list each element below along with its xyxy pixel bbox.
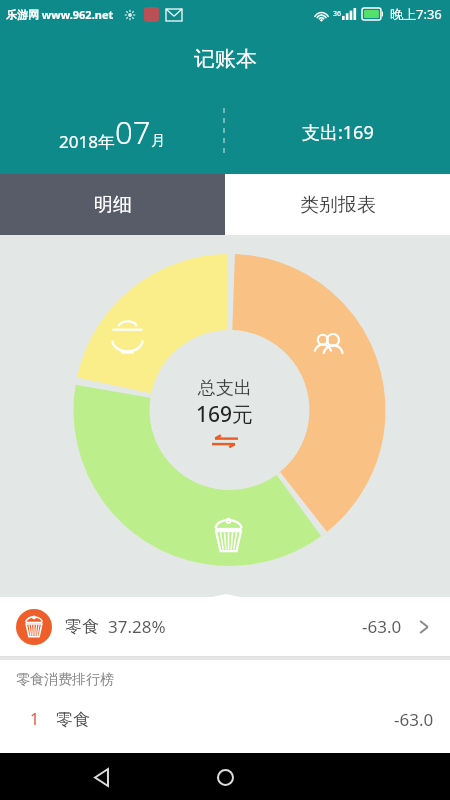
button[interactable]: 类别报表 xyxy=(225,174,450,235)
staticText: 零食消费排行榜 xyxy=(16,671,114,689)
staticText: 月 xyxy=(151,132,165,150)
staticText: 169元 xyxy=(196,400,254,429)
staticText: 明细 xyxy=(94,193,132,217)
staticText: 类别报表 xyxy=(300,193,376,217)
button[interactable]: 切换 xyxy=(210,433,240,449)
button[interactable]: 主页 xyxy=(202,754,248,800)
staticText: 2018年 xyxy=(59,130,115,153)
other: 详情 xyxy=(414,617,434,637)
staticText: 1 xyxy=(30,708,56,730)
staticText: 36 xyxy=(333,9,342,19)
staticText: 零食 xyxy=(56,709,90,730)
staticText: 37.28% xyxy=(108,615,166,638)
button[interactable]: 明细 xyxy=(0,174,225,235)
staticText: 乐游网 www.962.net xyxy=(6,7,114,22)
staticText: 支出:169 xyxy=(302,120,374,145)
staticText: 总支出 xyxy=(198,377,252,400)
button[interactable]: 零食 xyxy=(0,597,450,656)
staticText: 记账本 xyxy=(194,46,257,72)
button[interactable]: 返回 xyxy=(78,754,124,800)
staticText: -63.0 xyxy=(394,708,434,731)
staticText: 零食 xyxy=(65,616,99,637)
staticText: 07 xyxy=(115,111,151,153)
staticText: 晚上7:36 xyxy=(390,5,442,23)
staticText: -63.0 xyxy=(362,615,402,638)
button[interactable]: 1 xyxy=(0,700,450,738)
